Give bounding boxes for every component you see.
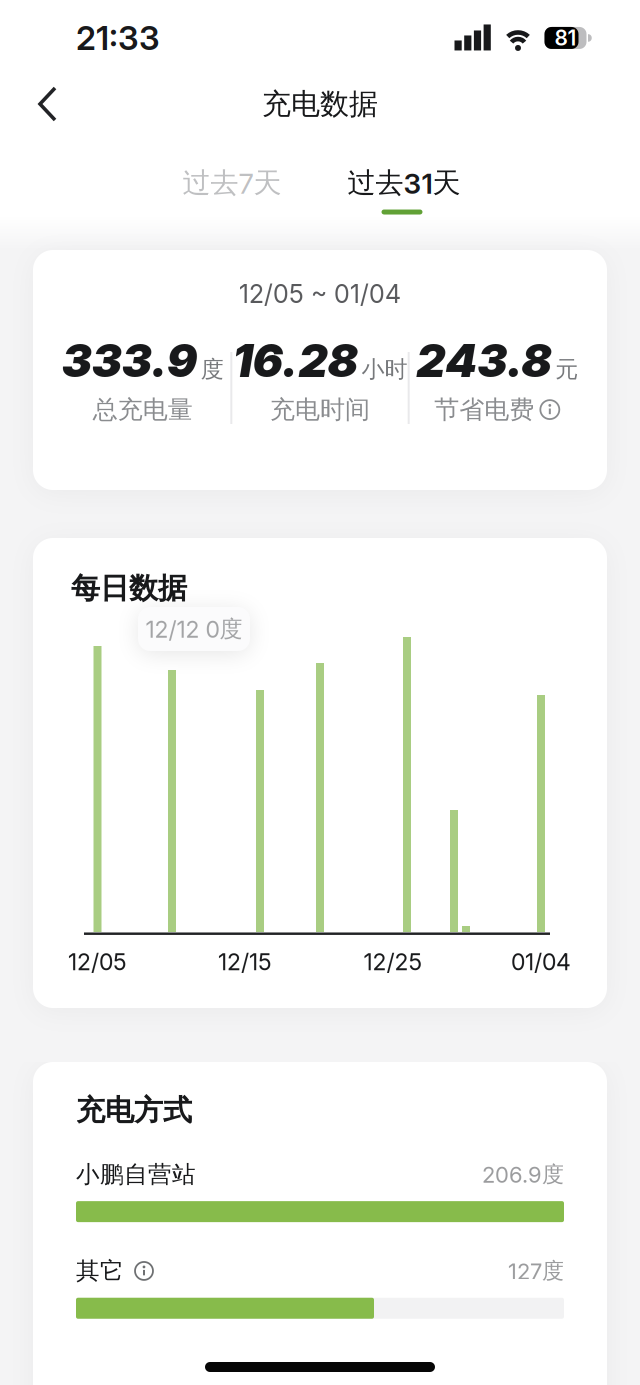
staticText: 333.9 xyxy=(62,333,198,388)
staticText: 12/05 ~ 01/04 xyxy=(239,279,401,309)
button[interactable] xyxy=(134,1261,154,1281)
staticText: 小鹏自营站 xyxy=(76,1159,196,1189)
staticText: 充电数据 xyxy=(262,86,378,122)
staticText: 16.28 xyxy=(232,333,358,388)
staticText: 充电方式 xyxy=(76,1092,192,1128)
staticText: 81 xyxy=(554,25,576,51)
staticText: 过去7天 xyxy=(182,165,281,201)
staticText: 12/12 0度 xyxy=(145,614,242,643)
staticText: 小时 xyxy=(361,355,407,384)
staticText: 每日数据 xyxy=(71,570,187,606)
button[interactable]: 过去31天 xyxy=(347,165,460,201)
staticText: 元 xyxy=(555,355,578,384)
staticText: 12/15 xyxy=(218,948,272,976)
staticText: 12/25 xyxy=(363,948,422,976)
button[interactable]: 过去7天 xyxy=(182,165,281,201)
staticText: 过去31天 xyxy=(347,165,460,201)
staticText: 度 xyxy=(201,355,224,384)
staticText: 127度 xyxy=(508,1257,564,1285)
staticText: 总充电量 xyxy=(93,394,193,425)
staticText: 21:33 xyxy=(76,18,160,58)
staticText: 节省电费 xyxy=(434,394,534,425)
staticText: 243.8 xyxy=(416,333,552,388)
button[interactable] xyxy=(37,86,59,122)
staticText: 01/04 xyxy=(511,948,571,976)
staticText: 206.9度 xyxy=(482,1160,564,1188)
staticText: 充电时间 xyxy=(270,394,370,425)
staticText: 12/05 xyxy=(68,948,127,976)
staticText: 其它 xyxy=(76,1256,124,1286)
